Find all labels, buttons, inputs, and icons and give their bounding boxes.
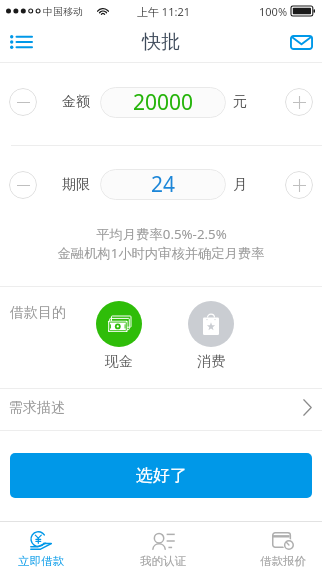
staticText: 消费 <box>197 353 225 371</box>
button[interactable]: 我的认证 <box>128 522 198 572</box>
staticText: 快批 <box>142 30 180 54</box>
staticText: 立即借款 <box>18 554 64 568</box>
button[interactable]: Messages <box>284 25 318 59</box>
staticText: 选好了 <box>136 465 187 486</box>
staticText: 金融机构1小时内审核并确定月费率 <box>57 244 265 262</box>
staticText: 金额 <box>62 93 90 111</box>
staticText: 现金 <box>105 353 133 371</box>
staticText: 24 <box>151 170 176 199</box>
staticText: 期限 <box>62 176 90 194</box>
button[interactable]: 需求描述 <box>0 389 322 430</box>
button[interactable]: 立即借款 <box>6 522 76 572</box>
staticText: 元 <box>233 93 247 111</box>
staticText: 借款报价 <box>260 554 306 568</box>
staticText: 平均月费率0.5%-2.5% <box>96 225 227 243</box>
button[interactable]: 现金 <box>96 301 142 371</box>
button[interactable]: 消费 <box>188 301 234 371</box>
staticText: 需求描述 <box>9 399 65 417</box>
button[interactable]: Increase <box>285 171 313 199</box>
button[interactable]: 借款报价 <box>248 522 318 572</box>
button[interactable]: Increase <box>285 88 313 116</box>
button[interactable]: 选好了 <box>10 453 312 498</box>
staticText: 上午 11:21 <box>137 4 190 19</box>
staticText: 我的认证 <box>140 554 186 568</box>
staticText: 月 <box>233 176 247 194</box>
staticText: 借款目的 <box>10 304 66 322</box>
staticText: 20000 <box>133 88 194 117</box>
button[interactable]: Decrease <box>9 88 37 116</box>
button[interactable]: Decrease <box>9 171 37 199</box>
button[interactable]: Menu <box>4 25 38 59</box>
staticText: 中国移动 <box>43 5 83 18</box>
staticText: 100% <box>259 4 288 19</box>
